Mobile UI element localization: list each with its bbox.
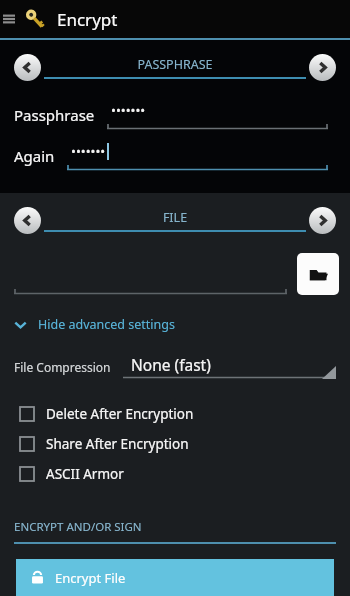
button[interactable]: ASCII Armor — [0, 459, 350, 489]
staticText: ENCRYPT AND/OR SIGN — [14, 519, 142, 535]
button[interactable]: ••••••• — [107, 101, 328, 130]
staticText: Again — [14, 146, 55, 166]
staticText: Hide advanced settings — [38, 316, 175, 333]
staticText: Passphrase — [14, 105, 95, 125]
staticText: Encrypt File — [55, 569, 126, 587]
staticText: Delete After Encryption — [46, 405, 194, 423]
staticText: FILE — [44, 209, 306, 226]
button[interactable]: ••••••• — [67, 142, 328, 171]
staticText: Share After Encryption — [46, 435, 189, 453]
button[interactable]: Hide advanced settings — [0, 311, 350, 338]
button[interactable]: Previous — [14, 54, 41, 81]
button[interactable]: None (fast) — [123, 354, 336, 379]
staticText: PASSPHRASE — [44, 56, 306, 73]
button[interactable]: Browse file — [297, 253, 339, 295]
button[interactable]: Next — [309, 207, 336, 234]
button[interactable]: Delete After Encryption — [0, 399, 350, 429]
button[interactable]: Share After Encryption — [0, 429, 350, 459]
button[interactable] — [14, 251, 287, 295]
staticText: ••••••• — [111, 101, 146, 119]
button[interactable]: Encrypt File — [16, 559, 334, 596]
staticText: Encrypt — [57, 8, 118, 31]
staticText: ••••••• — [71, 142, 106, 160]
staticText: File Compression — [14, 359, 111, 375]
staticText: ASCII Armor — [46, 465, 124, 483]
button[interactable]: Previous — [14, 207, 41, 234]
button[interactable]: Navigation drawer — [2, 0, 16, 38]
button[interactable]: Next — [309, 54, 336, 81]
staticText: None (fast) — [131, 354, 211, 375]
